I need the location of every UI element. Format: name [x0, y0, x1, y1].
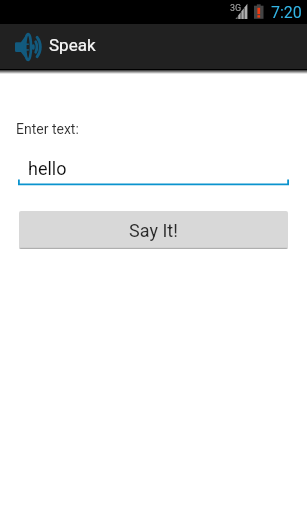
- button[interactable]: Say It!: [19, 211, 288, 249]
- staticText: Say It!: [129, 220, 178, 241]
- button[interactable]: hello: [18, 156, 289, 186]
- staticText: Speak: [49, 35, 96, 55]
- staticText: Enter text:: [16, 121, 79, 137]
- staticText: 7:20: [271, 3, 302, 22]
- staticText: 3G: [230, 3, 242, 14]
- other: App icon: [15, 34, 40, 60]
- staticText: hello: [28, 158, 67, 179]
